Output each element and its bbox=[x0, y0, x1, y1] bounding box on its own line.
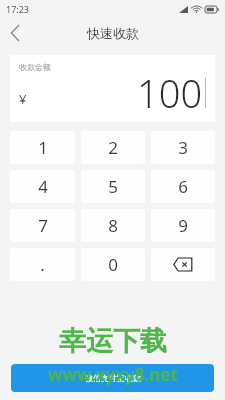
button[interactable]: 0 bbox=[81, 248, 145, 281]
staticText: ¥ bbox=[19, 90, 27, 108]
staticText: 幸运下载 bbox=[59, 324, 167, 358]
staticText: 9 bbox=[178, 214, 188, 237]
staticText: 8 bbox=[108, 214, 118, 237]
button[interactable]: 5 bbox=[81, 170, 145, 203]
button[interactable]: 9 bbox=[151, 209, 215, 242]
button[interactable]: Back bbox=[0, 18, 30, 48]
button[interactable]: 8 bbox=[81, 209, 145, 242]
staticText: . bbox=[40, 253, 45, 276]
staticText: 7 bbox=[38, 214, 48, 237]
staticText: 微信支付宝收款 bbox=[85, 373, 141, 383]
button[interactable]: Backspace bbox=[151, 248, 215, 281]
staticText: 5 bbox=[108, 175, 118, 198]
staticText: www.xyxy8.net bbox=[48, 363, 178, 386]
staticText: 收款金额 bbox=[19, 62, 51, 72]
button[interactable]: 2 bbox=[81, 131, 145, 164]
button[interactable]: 3 bbox=[151, 131, 215, 164]
button[interactable]: . bbox=[10, 248, 75, 281]
button[interactable]: 收款金额 bbox=[10, 55, 215, 122]
button[interactable]: 7 bbox=[10, 209, 75, 242]
staticText: 100 bbox=[137, 67, 203, 119]
staticText: 1 bbox=[38, 136, 48, 159]
staticText: 17:23 bbox=[6, 3, 30, 15]
button[interactable]: 微信支付宝收款 bbox=[11, 364, 214, 392]
staticText: 3 bbox=[178, 136, 188, 159]
staticText: 4 bbox=[38, 175, 48, 198]
button[interactable]: 6 bbox=[151, 170, 215, 203]
staticText: 快速收款 bbox=[87, 25, 139, 41]
staticText: 2 bbox=[108, 136, 118, 159]
button[interactable]: 1 bbox=[10, 131, 75, 164]
staticText: 0 bbox=[108, 253, 118, 276]
staticText: 6 bbox=[178, 175, 188, 198]
button[interactable]: 4 bbox=[10, 170, 75, 203]
